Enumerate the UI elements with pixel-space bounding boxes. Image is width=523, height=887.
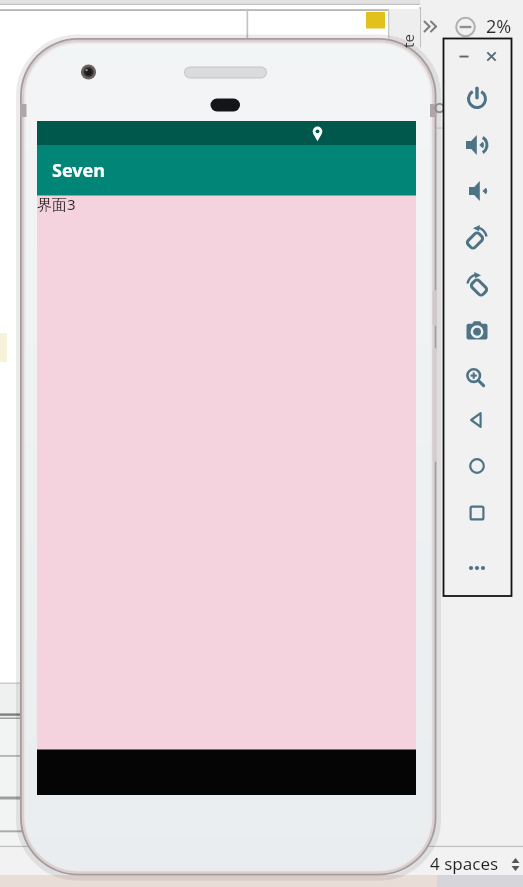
button[interactable] bbox=[462, 313, 492, 343]
button[interactable] bbox=[462, 451, 492, 481]
button[interactable] bbox=[462, 553, 492, 583]
button[interactable] bbox=[462, 405, 492, 435]
staticText: 界面3 bbox=[37, 194, 76, 214]
button[interactable] bbox=[462, 221, 492, 251]
button[interactable] bbox=[462, 498, 492, 528]
button[interactable] bbox=[462, 359, 492, 389]
staticText: 4 spaces bbox=[430, 852, 499, 875]
button[interactable] bbox=[462, 130, 492, 160]
button[interactable] bbox=[462, 268, 492, 298]
button[interactable] bbox=[462, 84, 492, 114]
staticText: 2% bbox=[486, 14, 512, 39]
staticText: te bbox=[398, 34, 418, 48]
button[interactable] bbox=[462, 176, 492, 206]
button[interactable] bbox=[37, 145, 416, 195]
staticText: Seven bbox=[52, 158, 106, 183]
